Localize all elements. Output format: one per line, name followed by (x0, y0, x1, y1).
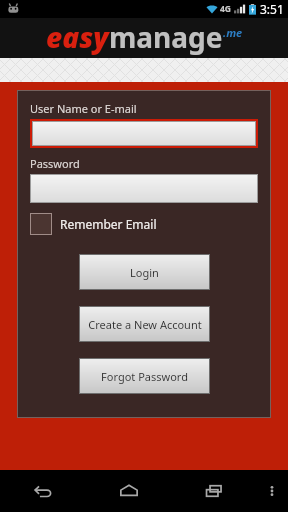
staticText: manage (109, 18, 223, 56)
staticText: Forgot Password (101, 369, 188, 384)
button[interactable]: Create a New Account (79, 306, 210, 342)
staticText: Password (30, 156, 80, 171)
staticText: 3:51 (260, 1, 284, 17)
staticText: Create a New Account (88, 317, 202, 332)
button[interactable]: Back (0, 470, 86, 512)
staticText: easy (46, 18, 109, 56)
staticText: Login (130, 265, 159, 280)
staticText: User Name or E-mail (30, 101, 137, 116)
button[interactable]: Login (79, 254, 210, 290)
staticText: 4G (220, 3, 232, 15)
button[interactable]: Forgot Password (79, 358, 210, 394)
button[interactable]: Remember Email (30, 213, 157, 235)
button[interactable]: Recent apps (171, 470, 256, 512)
button[interactable] (32, 121, 256, 146)
button[interactable]: Home (86, 470, 171, 512)
button[interactable] (30, 174, 258, 203)
button[interactable]: More options (256, 470, 288, 512)
staticText: .me (223, 25, 243, 40)
staticText: Remember Email (60, 216, 157, 232)
